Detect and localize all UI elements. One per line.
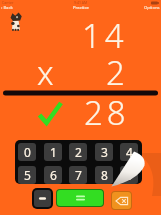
staticText: 2: [106, 50, 129, 95]
button[interactable]: 2: [69, 143, 87, 161]
button[interactable]: Backspace: [112, 192, 131, 209]
button[interactable]: 1: [44, 143, 62, 161]
staticText: Carrier: [2, 0, 14, 5]
button[interactable]: Enter: [57, 190, 103, 206]
button[interactable]: 7: [69, 166, 87, 184]
staticText: 28: [84, 90, 130, 135]
button[interactable]: 3: [95, 143, 113, 161]
staticText: 9: [126, 167, 133, 183]
staticText: 1: [50, 144, 57, 160]
staticText: 14: [82, 13, 128, 58]
staticText: ‹ Back: [1, 5, 13, 11]
staticText: 6: [50, 167, 57, 183]
staticText: 9:41 AM: [74, 0, 88, 5]
button[interactable]: 4: [120, 143, 138, 161]
staticText: 5: [24, 167, 31, 183]
staticText: 4: [126, 144, 133, 160]
staticText: 0: [24, 144, 31, 160]
staticText: 3: [101, 144, 108, 160]
staticText: x: [37, 50, 54, 95]
other: Mascot: [9, 12, 22, 31]
staticText: 8: [101, 167, 108, 183]
staticText: 7: [75, 167, 82, 183]
staticText: 2: [75, 144, 82, 160]
button[interactable]: 6: [44, 166, 62, 184]
staticText: Practice: [73, 5, 89, 11]
button[interactable]: ‹ Back: [1, 5, 13, 11]
button[interactable]: 8: [95, 166, 113, 184]
button[interactable]: 9: [120, 166, 138, 184]
button[interactable]: Options: [144, 5, 160, 11]
button[interactable]: Minus: [34, 190, 51, 207]
button[interactable]: 0: [18, 143, 36, 161]
button[interactable]: 5: [18, 166, 36, 184]
